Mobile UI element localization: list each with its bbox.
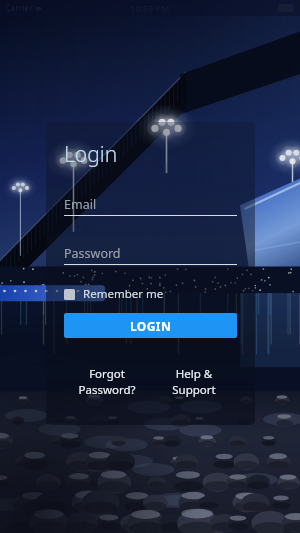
staticText: Help & Support bbox=[172, 366, 216, 397]
button[interactable]: LOGIN bbox=[64, 313, 237, 338]
staticText: 10:59 PM bbox=[130, 2, 170, 14]
button[interactable]: Remember me bbox=[64, 286, 164, 302]
staticText: Carrier bbox=[5, 2, 33, 14]
staticText: Remember me bbox=[83, 286, 164, 302]
button[interactable]: Help & Support bbox=[150, 366, 237, 397]
staticText: LOGIN bbox=[130, 318, 172, 334]
button[interactable]: Email bbox=[64, 194, 237, 216]
staticText: Forgot Password? bbox=[78, 366, 136, 397]
staticText: Password bbox=[64, 245, 121, 262]
staticText: Email bbox=[64, 196, 97, 213]
staticText: Login bbox=[64, 140, 118, 169]
button[interactable]: Password bbox=[64, 243, 237, 265]
button[interactable]: Forgot Password? bbox=[64, 366, 150, 397]
